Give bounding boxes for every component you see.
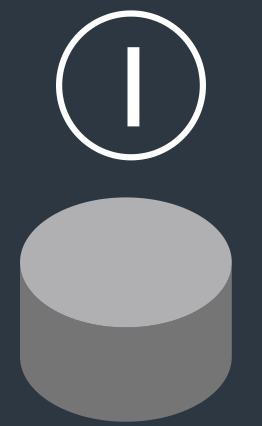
button[interactable]: Power [0,0,262,426]
